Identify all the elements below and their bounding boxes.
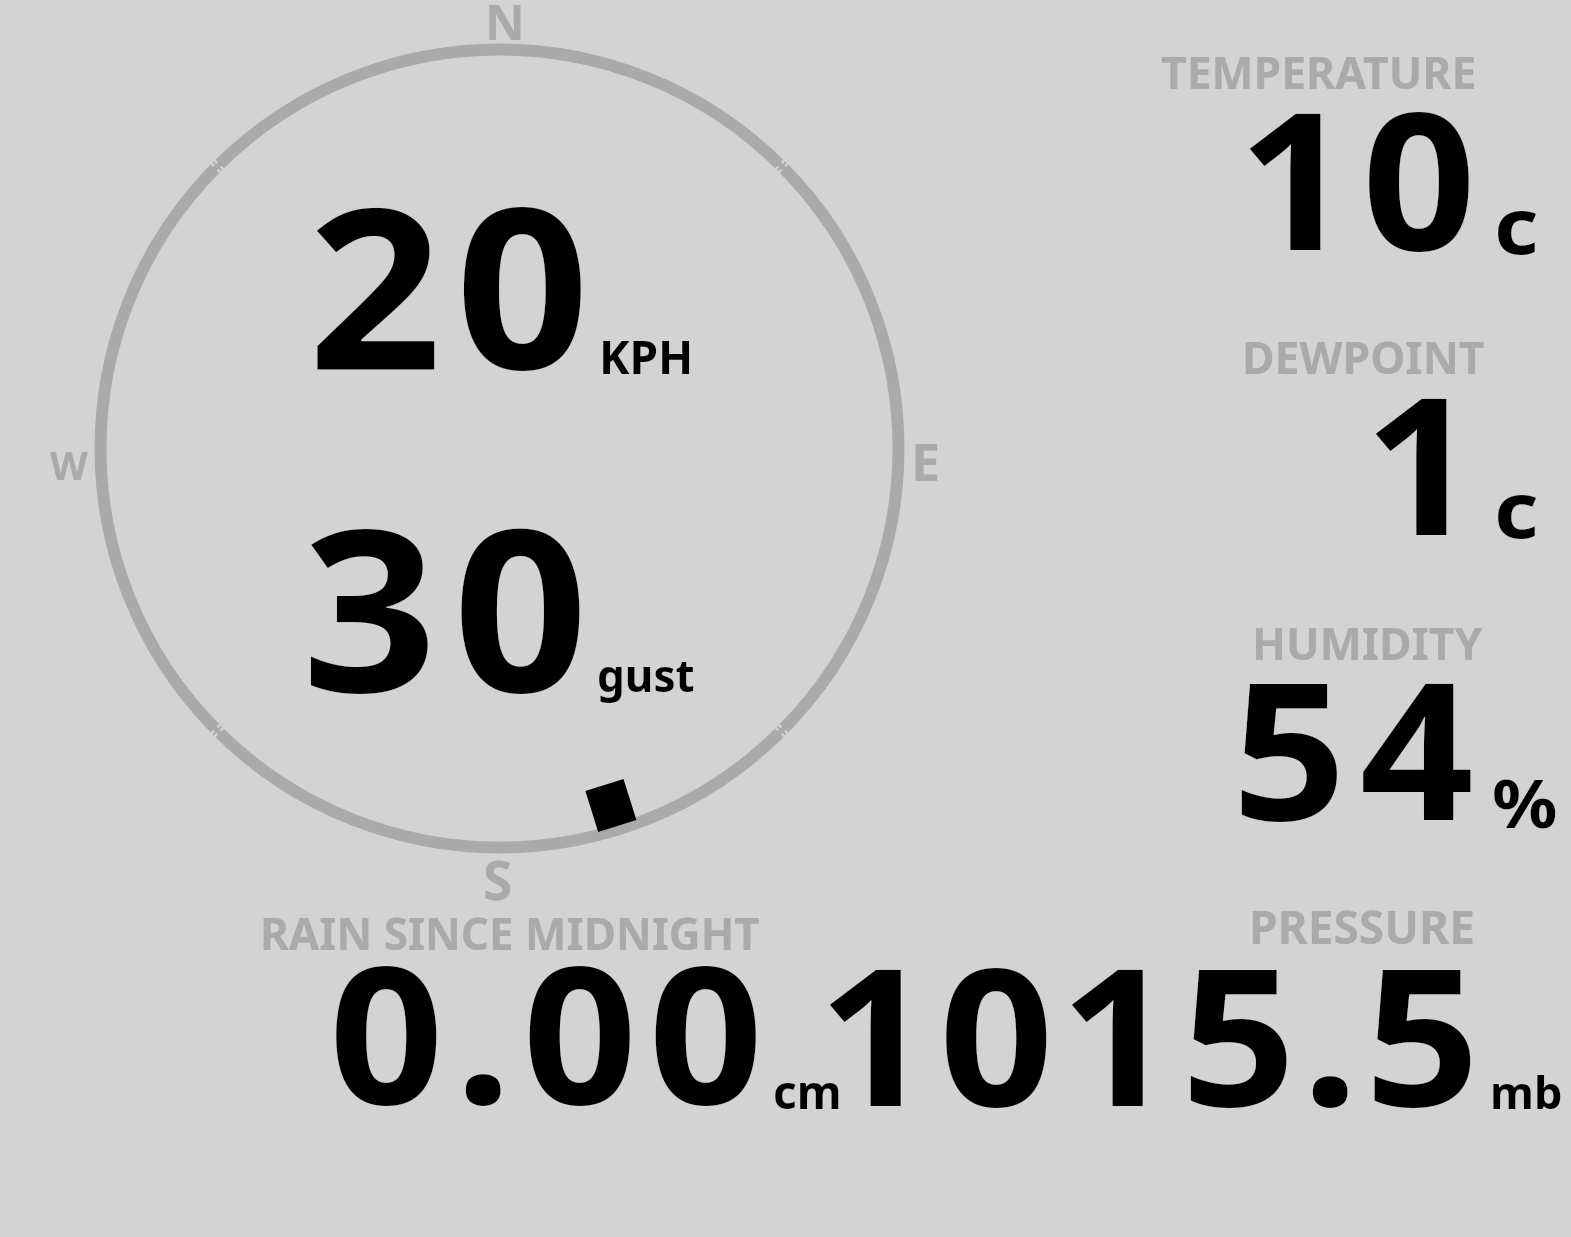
- staticText: PRESSURE: [1249, 895, 1475, 958]
- staticText: %: [1492, 757, 1558, 847]
- staticText: 30: [302, 451, 604, 757]
- button[interactable]: Wind 20 KPH, gusting 30 KPH, from south …: [0, 0, 960, 900]
- staticText: TEMPERATURE: [1161, 41, 1477, 102]
- button[interactable]: Rain since midnight 0.00 centimetres: [200, 880, 860, 1130]
- staticText: gust: [597, 645, 695, 705]
- staticText: HUMIDITY: [1252, 612, 1483, 673]
- staticText: 20: [308, 131, 604, 435]
- staticText: mb: [1490, 1061, 1563, 1122]
- staticText: c: [1494, 172, 1539, 277]
- staticText: 1015.5: [818, 902, 1486, 1162]
- staticText: cm: [773, 1060, 842, 1123]
- button[interactable]: Dewpoint 1 degree Celsius: [1150, 300, 1571, 580]
- staticText: N: [485, 0, 525, 55]
- button[interactable]: Humidity 54 percent: [1150, 590, 1571, 870]
- staticText: W: [50, 438, 88, 491]
- button[interactable]: Temperature 10 degrees Celsius: [1150, 20, 1571, 300]
- staticText: 10: [1238, 47, 1487, 306]
- staticText: RAIN SINCE MIDNIGHT: [260, 903, 760, 963]
- staticText: 54: [1232, 617, 1488, 876]
- staticText: KPH: [599, 325, 694, 388]
- staticText: DEWPOINT: [1242, 326, 1485, 387]
- staticText: 1: [1364, 332, 1478, 591]
- staticText: c: [1494, 456, 1539, 561]
- staticText: S: [483, 843, 513, 915]
- button[interactable]: Pressure 1015.5 millibars: [860, 880, 1571, 1130]
- staticText: E: [911, 425, 941, 496]
- staticText: 0.00: [329, 900, 775, 1160]
